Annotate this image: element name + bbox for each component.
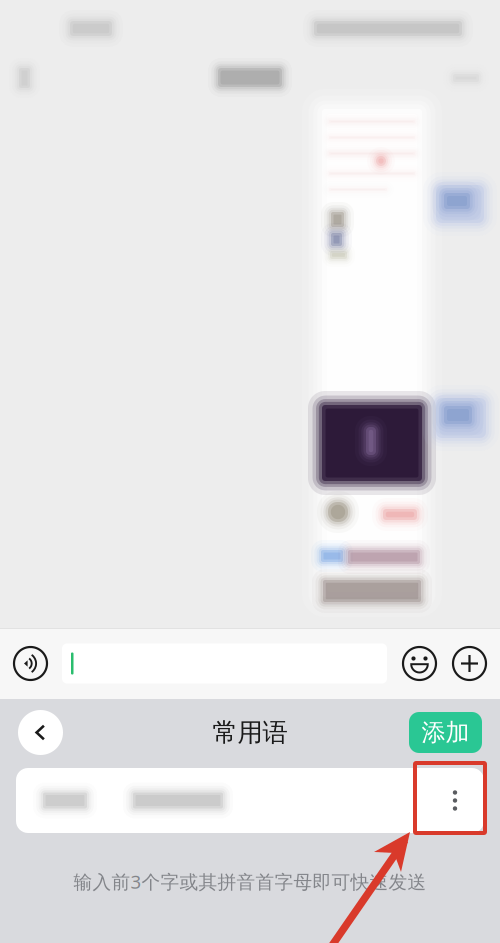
button[interactable]: Voice input [14,647,47,680]
button[interactable]: Emoji [403,647,436,680]
staticText: 常用语 [212,717,287,748]
staticText: 输入前3个字或其拼音首字母即可快速发送 [73,869,426,894]
staticText: 添加 [421,718,469,747]
button[interactable]: More [453,647,486,680]
button[interactable]: Back [18,710,63,755]
button[interactable] [16,768,484,833]
button[interactable]: 添加 [409,712,482,753]
